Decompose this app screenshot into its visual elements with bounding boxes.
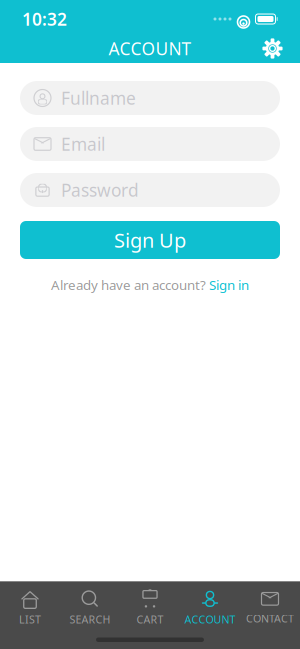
staticText: Email — [61, 132, 105, 155]
staticText: CART — [136, 612, 163, 626]
staticText: Fullname — [61, 86, 136, 109]
staticText: 10:32 — [22, 7, 67, 30]
staticText: CONTACT — [246, 611, 294, 625]
button[interactable]: CONTACT — [240, 582, 300, 629]
button[interactable]: Settings — [255, 31, 290, 66]
staticText: SEARCH — [69, 612, 110, 626]
staticText: LIST — [19, 612, 41, 626]
button[interactable]: SEARCH — [60, 581, 120, 630]
staticText: Sign in — [209, 276, 249, 294]
staticText: ACCOUNT — [184, 612, 235, 626]
staticText: Password — [61, 178, 139, 201]
button[interactable]: Sign Up — [20, 221, 280, 259]
button[interactable]: LIST — [0, 581, 60, 630]
staticText: Sign Up — [114, 227, 186, 253]
button[interactable]: Already have an account? — [51, 273, 249, 297]
staticText: Already have an account? — [51, 276, 206, 294]
staticText: ACCOUNT — [108, 37, 191, 60]
button[interactable]: ACCOUNT — [180, 581, 240, 630]
button[interactable]: CART — [120, 581, 180, 630]
